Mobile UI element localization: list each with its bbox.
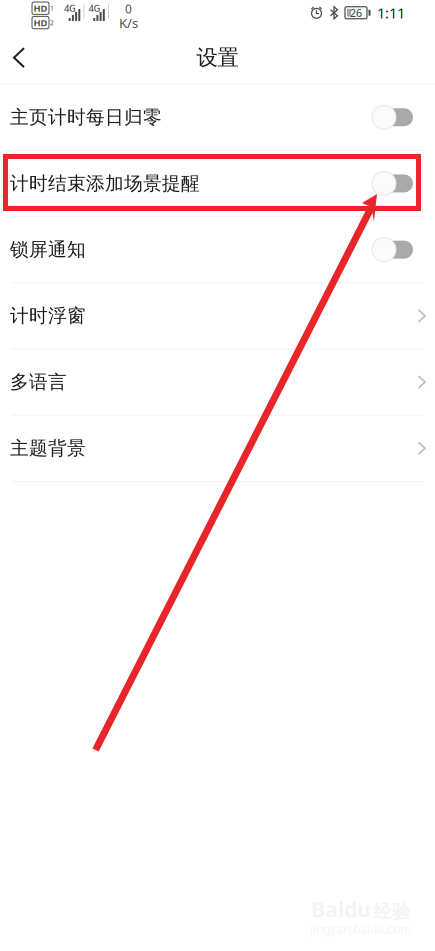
staticText: 计时浮窗 [10, 304, 86, 327]
staticText: 计时结束添加场景提醒 [10, 172, 200, 195]
button[interactable]: 多语言 [0, 349, 435, 415]
button[interactable]: 主题背景 [0, 416, 435, 481]
button[interactable]: 计时结束添加场景提醒 [0, 151, 435, 216]
staticText: HD [33, 16, 47, 29]
staticText: 1:11 [377, 3, 405, 22]
staticText: K/s [119, 14, 138, 32]
button[interactable]: 计时浮窗 [0, 283, 435, 348]
staticText: 主页计时每日归零 [10, 106, 162, 129]
staticText: 26 [350, 6, 362, 20]
staticText: 主题背景 [10, 437, 86, 460]
staticText: 2 [50, 18, 54, 27]
button[interactable]: Back [0, 32, 41, 84]
staticText: 设置 [196, 44, 238, 71]
button[interactable]: 主页计时每日归零 [0, 85, 435, 150]
staticText: 锁屏通知 [10, 238, 86, 261]
staticText: HD [33, 2, 47, 14]
staticText: 4G [88, 2, 100, 14]
button[interactable]: 锁屏通知 [0, 217, 435, 282]
staticText: Baidu [311, 895, 371, 923]
staticText: 1 [50, 4, 54, 13]
staticText: 4G [64, 2, 76, 14]
staticText: jingyan.baidu.com [310, 921, 411, 937]
staticText: 经验 [373, 900, 411, 923]
staticText: 多语言 [10, 371, 67, 393]
staticText: 0 [125, 1, 132, 17]
